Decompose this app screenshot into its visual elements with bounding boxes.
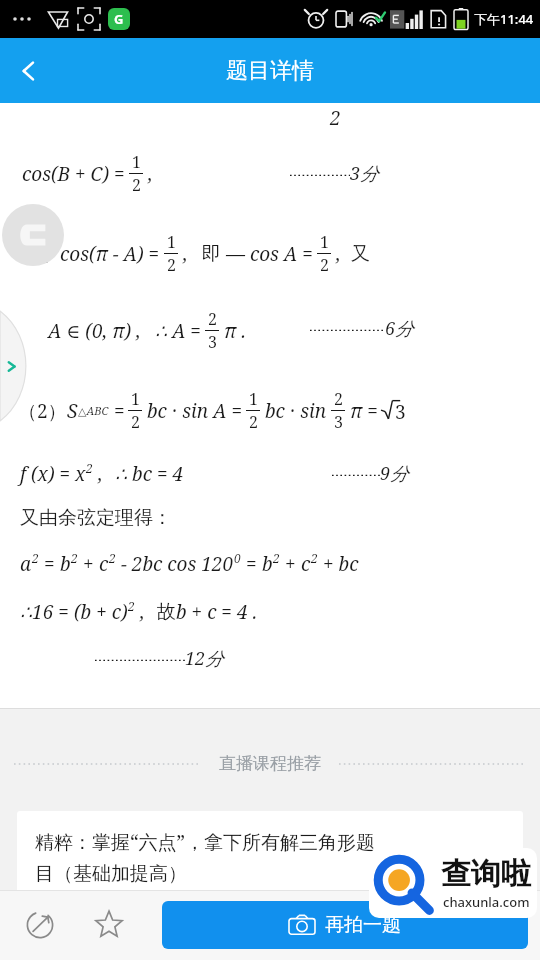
staticText: a <box>20 551 32 577</box>
button[interactable]: Favorite <box>74 890 144 960</box>
staticText: chaxunla.com <box>443 893 530 911</box>
staticText: , <box>178 241 188 267</box>
staticText: 3 <box>334 411 343 433</box>
staticText: 2 <box>128 598 135 614</box>
staticText: 直播课程推荐 <box>219 753 321 774</box>
staticText: 2 <box>109 550 116 566</box>
staticText: 0 <box>234 550 241 566</box>
staticText: + <box>280 551 301 577</box>
staticText: b <box>262 551 273 577</box>
staticText: 12分 <box>185 646 224 671</box>
staticText: 3 <box>395 399 406 425</box>
staticText: − 2bc cos 120 <box>116 551 234 577</box>
staticText: 下午11:44 <box>474 10 534 28</box>
staticText: 6分 <box>385 316 414 341</box>
staticText: 2 <box>320 254 329 276</box>
staticText: 查询啦 <box>441 855 531 893</box>
staticText: ∴ A = <box>155 318 201 344</box>
staticText: 又由余弦定理得： <box>20 506 172 530</box>
button[interactable]: 精粹：掌握“六点”，拿下所有解三角形题 <box>17 811 523 890</box>
staticText: 1 <box>131 388 140 410</box>
staticText: （2） <box>18 398 67 424</box>
staticText: π = <box>345 398 378 424</box>
staticText: — cos A = <box>221 241 313 267</box>
button[interactable]: Back <box>0 38 58 103</box>
staticText: bc · sin A = <box>142 398 243 424</box>
staticText: + bc <box>318 551 359 577</box>
staticText: 目（基础加提高） <box>35 862 187 886</box>
staticText: 又 <box>351 242 370 266</box>
staticText: 2 <box>131 411 140 433</box>
staticText: cos(B + C) = <box>22 161 125 187</box>
staticText: c <box>99 551 109 577</box>
staticText: G <box>114 10 124 28</box>
staticText: c <box>301 551 311 577</box>
staticText: A ∈ (0, π) , <box>48 318 141 344</box>
staticText: 3分 <box>350 161 379 186</box>
staticText: 9分 <box>380 461 409 486</box>
staticText: ∴ bc = 4 <box>115 461 184 487</box>
staticText: 2 <box>311 550 318 566</box>
staticText: 2 <box>86 460 93 476</box>
staticText: 2 <box>273 550 280 566</box>
staticText: b <box>60 551 71 577</box>
staticText: 1 <box>249 388 258 410</box>
staticText: 1 <box>320 231 329 253</box>
staticText: + <box>78 551 99 577</box>
staticText: 题目详情 <box>226 57 314 85</box>
staticText: = <box>39 551 60 577</box>
staticText: 精粹：掌握“六点”，拿下所有解三角形题 <box>35 829 376 855</box>
button[interactable]: Share <box>6 890 74 960</box>
staticText: 2 <box>167 254 176 276</box>
staticText: 1 <box>132 151 141 173</box>
staticText: , <box>93 461 103 487</box>
staticText: S <box>67 398 78 424</box>
staticText: , <box>331 241 341 267</box>
staticText: cos(π − A) = <box>60 241 160 267</box>
staticText: 2 <box>208 308 217 330</box>
staticText: 1 <box>167 231 176 253</box>
staticText: 2 <box>71 550 78 566</box>
staticText: 2 <box>334 388 343 410</box>
staticText: 2 <box>32 550 39 566</box>
staticText: , <box>143 161 153 187</box>
staticText: 即 <box>36 241 60 267</box>
staticText: 再拍一题 <box>325 913 401 937</box>
staticText: = <box>109 398 125 424</box>
staticText: 2 <box>249 411 258 433</box>
staticText: , <box>135 599 145 625</box>
staticText: ∴16 = <box>20 599 74 625</box>
staticText: 即 <box>202 242 221 266</box>
staticText: f (x) = x <box>20 461 86 487</box>
button[interactable]: 再拍一题 <box>162 901 528 949</box>
staticText: π . <box>219 318 246 344</box>
staticText: = <box>241 551 262 577</box>
staticText: b + c = 4 . <box>176 599 258 625</box>
staticText: △ABC <box>78 403 109 418</box>
staticText: 3 <box>208 331 217 353</box>
staticText: bc · sin <box>260 398 327 424</box>
staticText: (b + c) <box>74 599 128 625</box>
staticText: 故 <box>157 600 176 624</box>
staticText: 2 <box>132 174 141 196</box>
staticText: 2 <box>330 105 341 131</box>
